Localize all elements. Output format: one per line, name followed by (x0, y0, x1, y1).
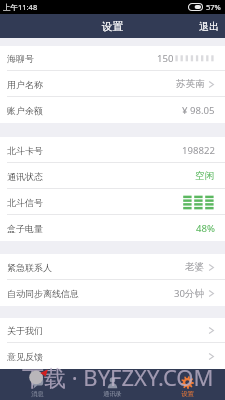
button[interactable]: 北斗信号 (0, 189, 225, 215)
button[interactable]: 通讯状态 (0, 163, 225, 189)
staticText: 海聊号 (7, 53, 34, 64)
staticText: 设置 (102, 20, 123, 33)
staticText: 57% (206, 2, 221, 12)
staticText: 苏英南 (176, 78, 205, 90)
staticText: 下载 · BYFZXY.COM (22, 362, 214, 392)
button[interactable]: 消息 (0, 369, 75, 398)
button[interactable]: 退出 (193, 15, 225, 38)
staticText: 48% (196, 222, 215, 235)
staticText: 上午11:48 (3, 2, 38, 12)
staticText: 30分钟 (174, 287, 205, 300)
button[interactable]: 自动同步离线信息 (0, 280, 225, 306)
button[interactable]: 关于我们 (0, 318, 225, 343)
staticText: 北斗信号 (7, 197, 43, 208)
staticText: 自动同步离线信息 (7, 288, 79, 299)
button[interactable]: 紧急联系人 (0, 254, 225, 280)
staticText: 老婆 (185, 261, 205, 273)
button[interactable]: 通讯录 (75, 369, 150, 398)
staticText: 空闲 (195, 170, 215, 182)
staticText: 账户余额 (7, 105, 43, 116)
staticText: 紧急联系人 (7, 262, 52, 273)
button[interactable]: 北斗卡号 (0, 137, 225, 163)
staticText: 关于我们 (7, 325, 43, 336)
staticText: 意见反馈 (7, 351, 43, 362)
staticText: 设置 (181, 390, 194, 398)
staticText: 退出 (199, 20, 219, 33)
staticText: 用户名称 (7, 79, 43, 90)
button[interactable]: 意见反馈 (0, 343, 225, 369)
button[interactable]: 盒子电量 (0, 215, 225, 241)
staticText: 盒子电量 (7, 223, 43, 234)
staticText: 通讯状态 (7, 171, 43, 182)
button[interactable]: 用户名称 (0, 71, 225, 97)
staticText: 北斗卡号 (7, 145, 43, 156)
button[interactable]: 海聊号 (0, 46, 225, 71)
button[interactable]: 账户余额 (0, 97, 225, 123)
staticText: ¥ 98.05 (182, 104, 215, 117)
staticText: 150 (157, 52, 174, 65)
staticText: 消息 (31, 390, 44, 398)
staticText: 通讯录 (103, 390, 122, 398)
staticText: 198822 (182, 144, 215, 157)
button[interactable]: 设置 (150, 369, 225, 398)
